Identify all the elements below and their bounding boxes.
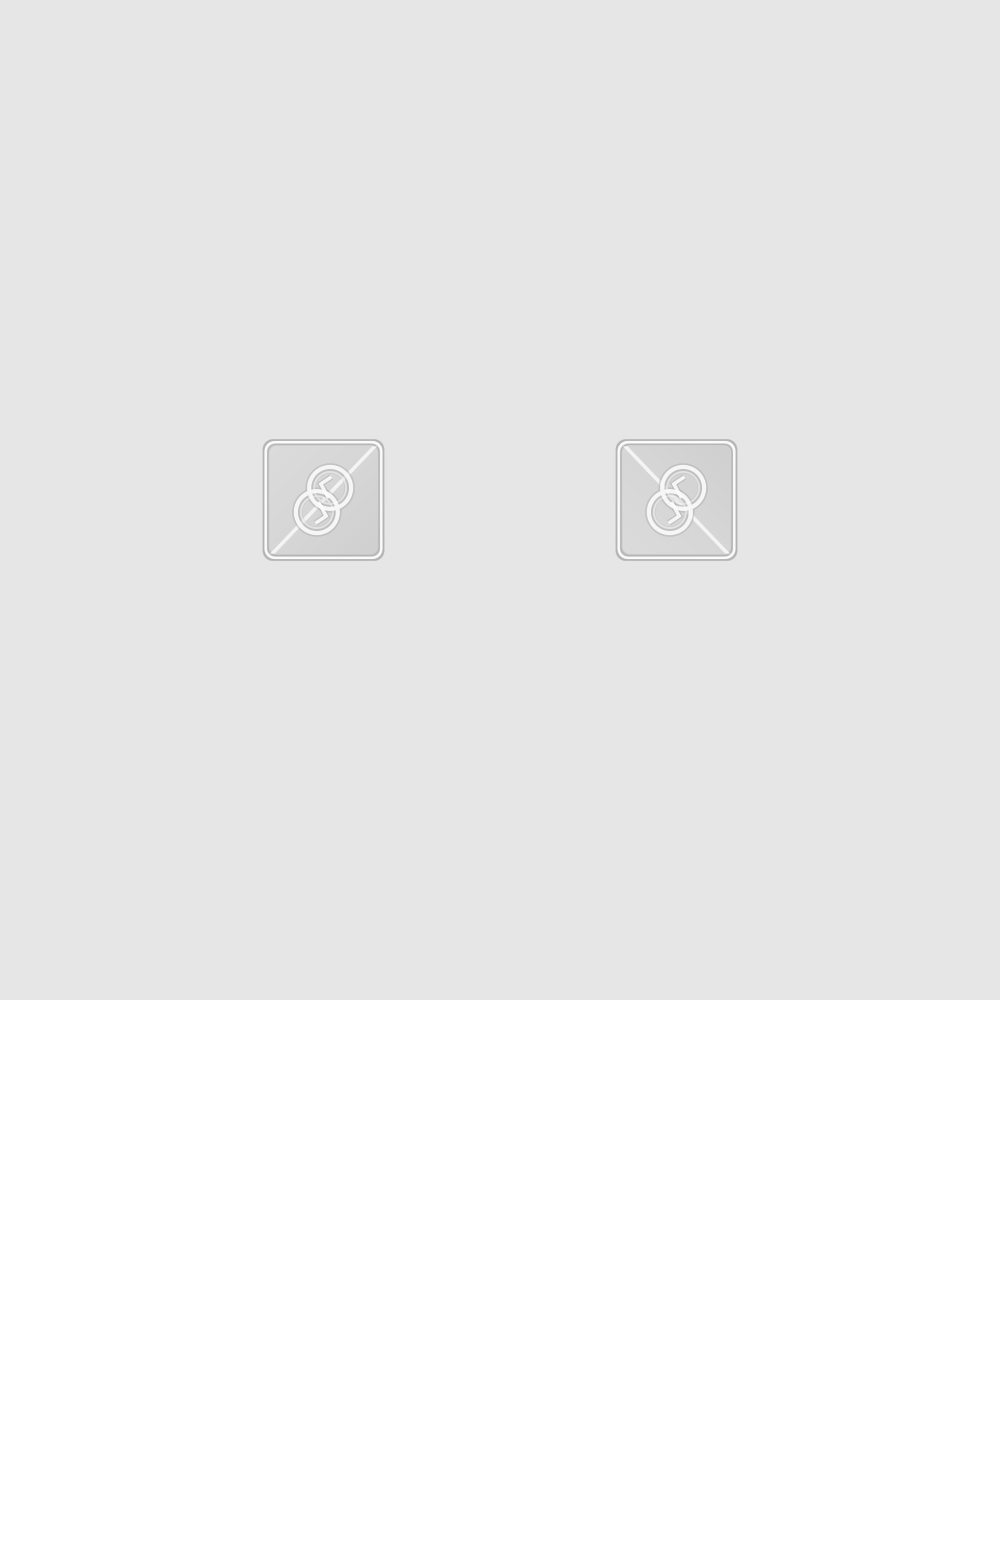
button[interactable]: Monogram hardware, reverse view — [615, 439, 737, 561]
button[interactable]: Monogram hardware, front view — [262, 439, 384, 561]
